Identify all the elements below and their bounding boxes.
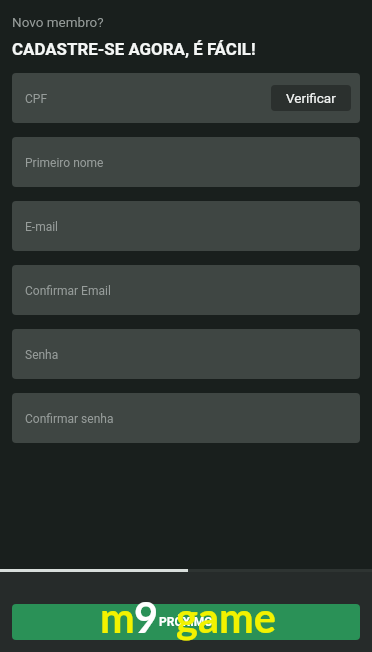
- staticText: game: [176, 592, 276, 642]
- staticText: E-mail: [25, 220, 59, 234]
- staticText: Novo membro?: [12, 14, 104, 30]
- button[interactable]: Senha: [12, 329, 360, 379]
- staticText: Verificar: [286, 90, 336, 106]
- staticText: Confirmar senha: [25, 412, 114, 426]
- button[interactable]: PRÓXIMO: [12, 604, 360, 640]
- button[interactable]: Verificar: [271, 85, 351, 111]
- staticText: Primeiro nome: [25, 156, 104, 170]
- staticText: Confirmar Email: [25, 284, 111, 298]
- staticText: CADASTRE-SE AGORA, É FÁCIL!: [12, 39, 256, 59]
- button[interactable]: Confirmar Email: [12, 265, 360, 315]
- staticText: 9: [134, 592, 159, 642]
- button[interactable]: Confirmar senha: [12, 393, 360, 443]
- staticText: PRÓXIMO: [159, 615, 213, 629]
- staticText: Senha: [25, 348, 59, 362]
- button[interactable]: E-mail: [12, 201, 360, 251]
- button[interactable]: CPF: [12, 73, 360, 123]
- other: Progresso do cadastro: [0, 569, 372, 572]
- staticText: m: [100, 592, 135, 642]
- staticText: CPF: [25, 92, 48, 106]
- button[interactable]: Primeiro nome: [12, 137, 360, 187]
